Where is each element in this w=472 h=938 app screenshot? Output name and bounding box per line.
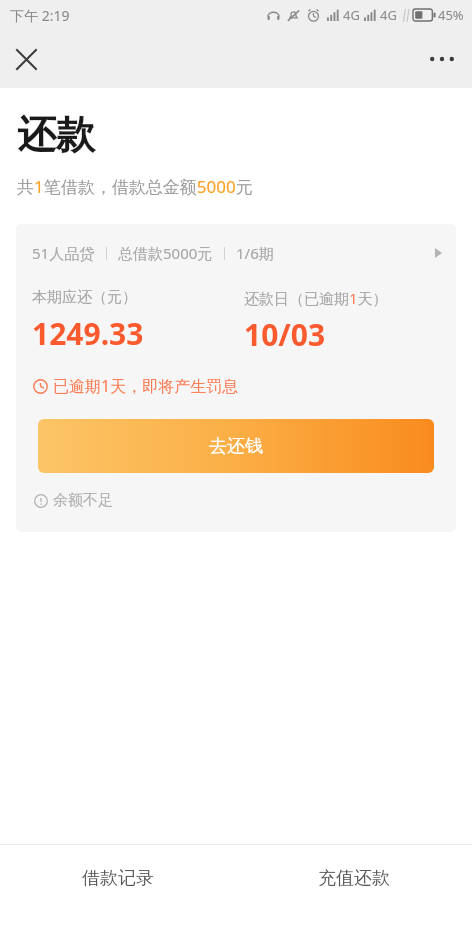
staticText: 去还钱 — [209, 435, 263, 458]
staticText: 45% — [438, 6, 464, 24]
button[interactable]: More options — [420, 37, 464, 81]
button[interactable]: 51人品贷 — [16, 224, 456, 282]
staticText: 共1笔借款，借款总金额5000元 — [17, 175, 253, 198]
staticText: 已逾期1天，即将产生罚息 — [53, 375, 239, 397]
staticText: 总借款5000元 — [118, 243, 213, 263]
button[interactable]: 充值还款 — [236, 845, 472, 911]
staticText: 还款日（已逾期1天） — [244, 288, 388, 308]
staticText: 下午 2:19 — [10, 6, 70, 25]
staticText: 51人品贷 — [32, 243, 95, 263]
staticText: 余额不足 — [53, 491, 113, 510]
button[interactable]: Close — [4, 37, 48, 81]
staticText: 充值还款 — [318, 867, 390, 890]
staticText: 本期应还（元） — [32, 288, 137, 307]
staticText: 4G — [380, 6, 397, 24]
staticText: 借款记录 — [82, 867, 154, 890]
staticText: 1/6期 — [236, 243, 274, 263]
staticText: 1249.33 — [32, 313, 144, 354]
staticText: 4G — [343, 6, 360, 24]
staticText: 还款 — [17, 110, 95, 159]
button[interactable]: 去还钱 — [38, 419, 434, 473]
button[interactable]: 借款记录 — [0, 845, 236, 911]
staticText: 10/03 — [244, 314, 326, 355]
